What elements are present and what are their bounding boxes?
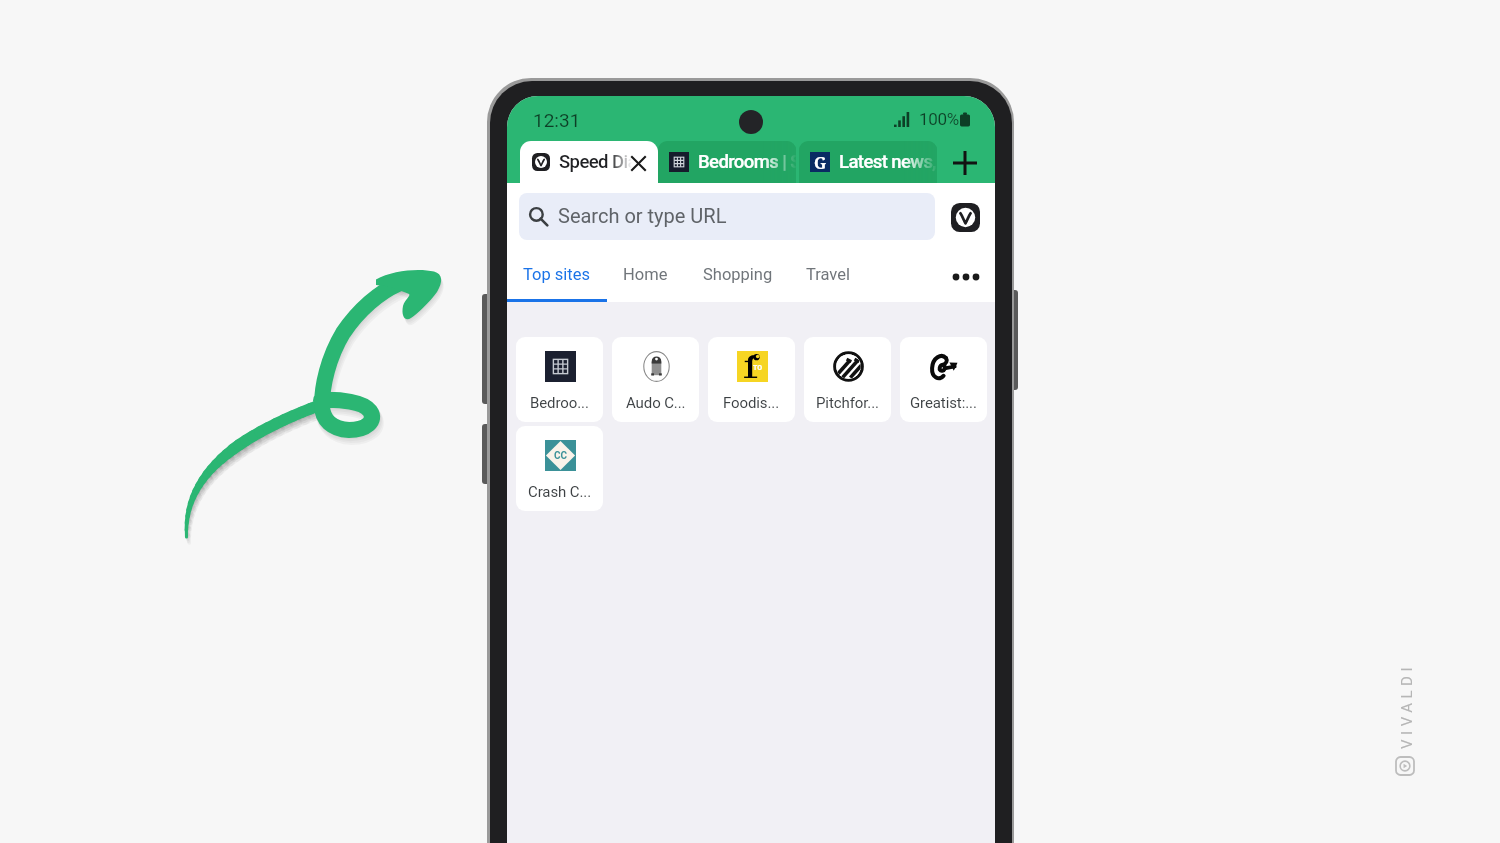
staticText: Crash C...	[528, 483, 592, 501]
staticText: Speed Dial	[559, 151, 632, 173]
staticText: G	[814, 152, 827, 172]
button[interactable]: Pitchfor...	[804, 337, 891, 422]
button[interactable]: Speed Dial	[520, 141, 658, 184]
staticText: Top sites	[523, 265, 591, 284]
button[interactable]: Vivaldi menu	[947, 199, 984, 236]
staticText: Home	[623, 265, 668, 284]
staticText: 100%	[919, 109, 959, 129]
staticText: Audo C...	[626, 394, 686, 412]
button[interactable]: Home	[607, 255, 684, 302]
staticText: Search or type URL	[558, 204, 727, 227]
staticText: Greatist:...	[910, 394, 977, 412]
button[interactable]: Search or type URL	[519, 193, 935, 240]
button[interactable]: Bedroo...	[516, 337, 603, 422]
staticText: CC	[554, 450, 568, 462]
button[interactable]: Top sites	[507, 255, 607, 302]
button[interactable]: Shopping	[684, 255, 791, 302]
staticText: Bedroo...	[530, 394, 589, 412]
button[interactable]: New tab	[944, 141, 985, 184]
button[interactable]: Bedrooms | Sta	[658, 141, 796, 184]
button[interactable]: Travel	[791, 255, 866, 302]
staticText: 12:31	[533, 109, 581, 131]
button[interactable]: Close tab	[626, 151, 650, 175]
staticText: TO	[753, 364, 763, 372]
button[interactable]: CC	[516, 426, 603, 511]
staticText: Bedrooms | Sta	[698, 151, 796, 173]
button[interactable]: More options	[949, 260, 983, 294]
button[interactable]: Greatist:...	[900, 337, 987, 422]
button[interactable]: G	[799, 141, 937, 184]
staticText: Foodis...	[723, 394, 780, 412]
button[interactable]: TO	[708, 337, 795, 422]
button[interactable]: Audo C...	[612, 337, 699, 422]
staticText: Pitchfor...	[816, 394, 879, 412]
staticText: Travel	[806, 265, 851, 284]
staticText: Latest news, sp	[839, 151, 937, 173]
staticText: Shopping	[703, 265, 773, 284]
staticText: VIVALDI	[1398, 660, 1416, 752]
